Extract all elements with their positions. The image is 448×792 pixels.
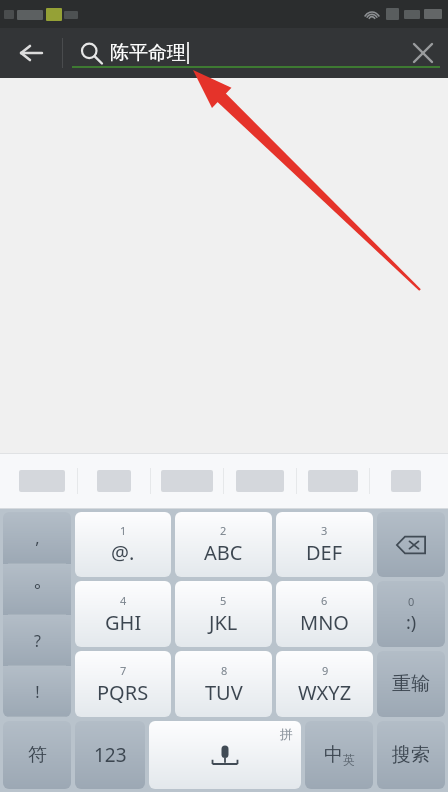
- button[interactable]: Clear: [398, 28, 448, 78]
- button[interactable]: ,: [3, 512, 71, 564]
- staticText: 0: [408, 594, 415, 609]
- staticText: °: [34, 579, 41, 601]
- staticText: PQRS: [97, 679, 149, 706]
- button[interactable]: [78, 453, 150, 509]
- button[interactable]: Voice input / Space: [149, 721, 301, 789]
- button[interactable]: 符: [3, 721, 71, 789]
- button[interactable]: [151, 453, 223, 509]
- staticText: !: [35, 681, 40, 703]
- staticText: 重输: [392, 672, 430, 696]
- button[interactable]: 2: [175, 512, 272, 577]
- button[interactable]: !: [3, 666, 71, 717]
- staticText: 6: [321, 593, 328, 608]
- button[interactable]: [370, 453, 442, 509]
- button[interactable]: 123: [75, 721, 145, 789]
- button[interactable]: Backspace: [377, 512, 445, 577]
- staticText: 英: [343, 752, 355, 767]
- staticText: 中: [324, 743, 343, 767]
- staticText: DEF: [306, 539, 343, 566]
- staticText: 9: [322, 663, 329, 678]
- button[interactable]: 搜索: [377, 721, 445, 789]
- staticText: 4: [120, 593, 127, 608]
- staticText: GHI: [105, 609, 142, 636]
- button[interactable]: 9: [276, 651, 373, 717]
- button[interactable]: 4: [75, 581, 171, 647]
- button[interactable]: [297, 453, 369, 509]
- button[interactable]: Back: [0, 28, 62, 78]
- button[interactable]: [6, 453, 77, 509]
- button[interactable]: 0: [377, 581, 445, 647]
- staticText: 5: [220, 593, 227, 608]
- button[interactable]: 6: [276, 581, 373, 647]
- staticText: 陈平命理: [110, 41, 186, 65]
- button[interactable]: 重输: [377, 651, 445, 717]
- staticText: 符: [28, 743, 47, 767]
- button[interactable]: 1: [75, 512, 171, 577]
- staticText: 123: [94, 742, 127, 768]
- staticText: 7: [120, 663, 127, 678]
- staticText: JKL: [209, 609, 238, 636]
- staticText: 1: [120, 523, 127, 538]
- button[interactable]: °: [3, 564, 71, 615]
- staticText: ABC: [204, 539, 243, 566]
- button[interactable]: 陈平命理: [110, 28, 380, 78]
- staticText: TUV: [205, 679, 243, 706]
- staticText: ,: [35, 527, 40, 549]
- button[interactable]: 7: [75, 651, 171, 717]
- button[interactable]: 8: [175, 651, 272, 717]
- staticText: ?: [34, 630, 41, 652]
- button[interactable]: ?: [3, 615, 71, 666]
- staticText: @.: [111, 539, 135, 566]
- staticText: 8: [221, 663, 228, 678]
- button[interactable]: 中: [305, 721, 373, 789]
- staticText: MNO: [300, 609, 349, 636]
- staticText: 2: [220, 523, 227, 538]
- button[interactable]: 5: [175, 581, 272, 647]
- staticText: 搜索: [392, 743, 430, 767]
- staticText: :): [406, 610, 417, 635]
- staticText: WXYZ: [298, 679, 352, 706]
- staticText: 拼: [280, 726, 293, 742]
- staticText: 3: [321, 523, 328, 538]
- button[interactable]: 3: [276, 512, 373, 577]
- button[interactable]: [224, 453, 296, 509]
